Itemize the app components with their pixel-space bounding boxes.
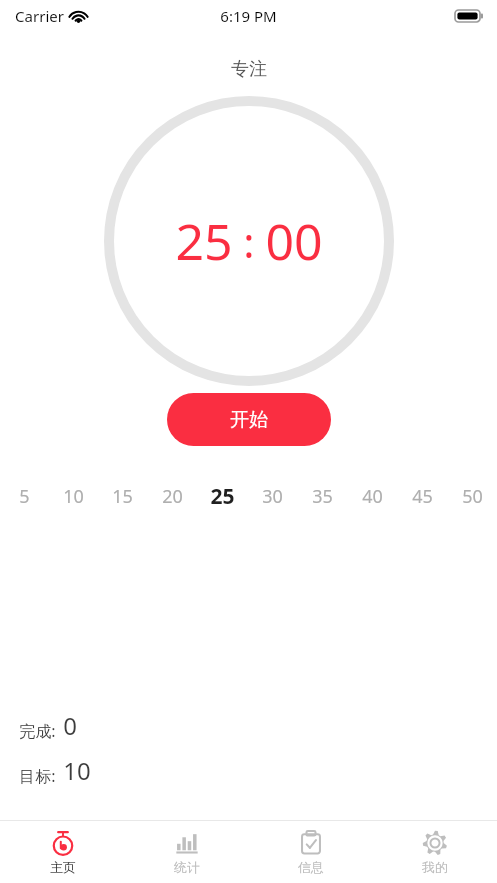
button[interactable]: 5 [0, 477, 49, 515]
staticText: 20 [162, 484, 183, 509]
staticText: 信息 [298, 859, 324, 875]
button[interactable]: 开始 [167, 393, 331, 446]
button[interactable]: 20 [147, 477, 197, 515]
staticText: 目标: [19, 765, 56, 787]
button[interactable]: 50 [447, 477, 497, 515]
staticText: 10 [63, 754, 91, 787]
staticText: 30 [262, 484, 283, 509]
button[interactable]: 40 [347, 477, 397, 515]
staticText: 00 [265, 207, 323, 275]
button[interactable]: 我的 [373, 821, 497, 883]
staticText: : [243, 213, 255, 270]
staticText: 35 [312, 484, 333, 509]
staticText: 专注 [231, 58, 267, 81]
staticText: 15 [112, 484, 133, 509]
staticText: 10 [63, 484, 84, 509]
button[interactable]: 信息 [249, 821, 373, 883]
button[interactable]: 45 [397, 477, 447, 515]
button[interactable]: 35 [297, 477, 347, 515]
button[interactable]: 30 [247, 477, 297, 515]
staticText: 6:19 PM [220, 6, 277, 26]
staticText: 25 [175, 207, 233, 275]
staticText: 25 [210, 482, 235, 511]
staticText: 45 [412, 484, 433, 509]
staticText: 5 [19, 484, 30, 509]
staticText: 0 [63, 709, 77, 742]
staticText: 统计 [174, 859, 200, 875]
button[interactable]: 25 [197, 477, 247, 515]
staticText: 完成: [19, 720, 56, 742]
staticText: 40 [362, 484, 383, 509]
staticText: 50 [462, 484, 483, 509]
staticText: 我的 [422, 859, 448, 875]
button[interactable]: 15 [98, 477, 147, 515]
button[interactable]: 统计 [125, 821, 249, 883]
staticText: 主页 [50, 859, 76, 875]
staticText: 开始 [230, 408, 268, 432]
staticText: Carrier [15, 6, 64, 26]
button[interactable]: 主页 [0, 821, 125, 883]
button[interactable]: 10 [49, 477, 98, 515]
